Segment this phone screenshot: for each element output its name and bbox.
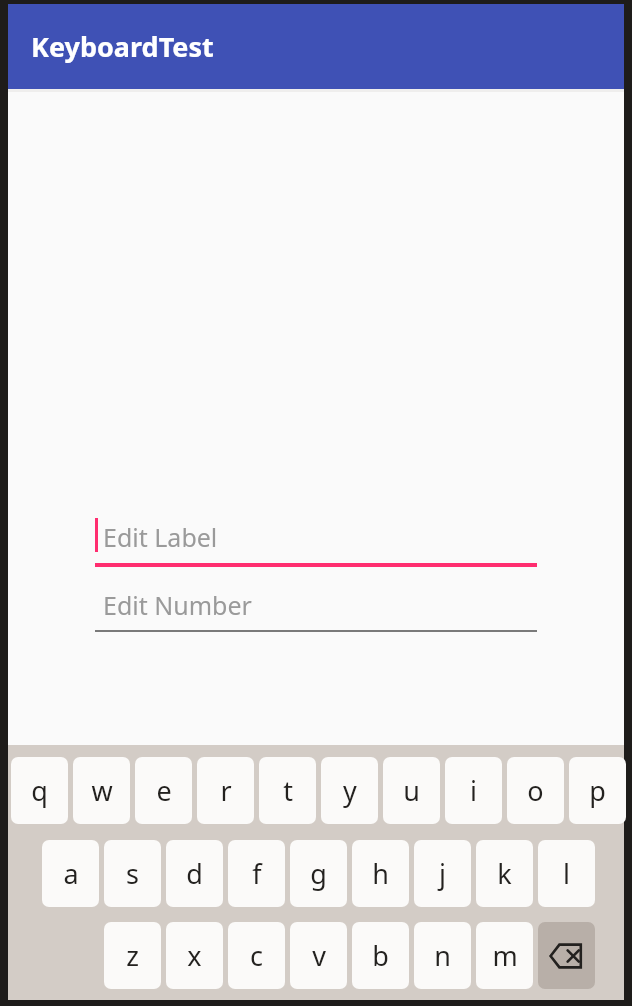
button[interactable]: u: [383, 757, 440, 824]
button[interactable]: z: [104, 922, 161, 989]
button[interactable]: Edit Number: [95, 588, 537, 632]
staticText: KeyboardTest: [31, 28, 214, 65]
button[interactable]: k: [476, 840, 533, 907]
button[interactable]: h: [352, 840, 409, 907]
button[interactable]: g: [290, 840, 347, 907]
button[interactable]: a: [42, 840, 99, 907]
button[interactable]: v: [290, 922, 347, 989]
button[interactable]: b: [352, 922, 409, 989]
staticText: x: [187, 937, 202, 974]
staticText: q: [31, 772, 48, 809]
staticText: Edit Number: [103, 588, 252, 622]
staticText: Edit Label: [103, 520, 218, 554]
staticText: p: [589, 772, 606, 809]
staticText: h: [372, 855, 389, 892]
button[interactable]: i: [445, 757, 502, 824]
button[interactable]: r: [197, 757, 254, 824]
button[interactable]: q: [11, 757, 68, 824]
staticText: j: [439, 855, 446, 892]
button[interactable]: d: [166, 840, 223, 907]
staticText: i: [470, 772, 477, 809]
staticText: o: [527, 772, 544, 809]
button[interactable]: c: [228, 922, 285, 989]
button[interactable]: Backspace: [538, 922, 595, 989]
staticText: w: [91, 772, 113, 809]
button[interactable]: t: [259, 757, 316, 824]
button[interactable]: l: [538, 840, 595, 907]
button[interactable]: KeyboardTest: [8, 4, 624, 89]
button[interactable]: e: [135, 757, 192, 824]
staticText: v: [312, 937, 326, 974]
staticText: y: [343, 772, 357, 809]
staticText: e: [156, 772, 172, 809]
staticText: l: [563, 855, 570, 892]
button[interactable]: y: [321, 757, 378, 824]
staticText: c: [250, 937, 263, 974]
staticText: n: [434, 937, 451, 974]
button[interactable]: Edit Label: [95, 520, 537, 567]
button[interactable]: x: [166, 922, 223, 989]
button[interactable]: j: [414, 840, 471, 907]
staticText: g: [310, 855, 327, 892]
staticText: f: [252, 855, 262, 892]
button[interactable]: o: [507, 757, 564, 824]
button[interactable]: f: [228, 840, 285, 907]
staticText: a: [63, 855, 79, 892]
button[interactable]: p: [569, 757, 626, 824]
staticText: b: [372, 937, 389, 974]
button[interactable]: w: [73, 757, 130, 824]
staticText: m: [492, 937, 518, 974]
staticText: k: [497, 855, 512, 892]
staticText: u: [403, 772, 420, 809]
button[interactable]: m: [476, 922, 533, 989]
staticText: r: [220, 772, 232, 809]
button[interactable]: s: [104, 840, 161, 907]
staticText: t: [283, 772, 293, 809]
staticText: z: [126, 937, 139, 974]
staticText: s: [126, 855, 139, 892]
button[interactable]: n: [414, 922, 471, 989]
staticText: d: [186, 855, 203, 892]
